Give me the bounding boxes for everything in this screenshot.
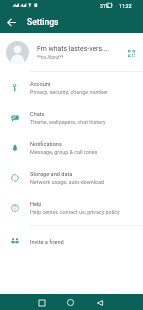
button[interactable]: Invite a friend bbox=[0, 226, 143, 256]
staticText: Account bbox=[30, 81, 51, 88]
button[interactable]: Home bbox=[63, 295, 78, 310]
staticText: Chats bbox=[30, 111, 45, 118]
button[interactable]: Recent apps bbox=[34, 295, 49, 310]
staticText: Fm whats lastes-vers... bbox=[37, 45, 108, 53]
staticText: Help bbox=[30, 201, 42, 208]
button[interactable]: Account bbox=[0, 72, 143, 102]
staticText: Network usage, auto-download bbox=[30, 179, 105, 185]
staticText: Storage and data bbox=[30, 171, 73, 178]
staticText: Theme, wallpapers, chat history bbox=[30, 119, 106, 125]
staticText: Message, group & call tones bbox=[30, 149, 98, 155]
button[interactable]: Storage and data bbox=[0, 162, 143, 192]
staticText: **no About** bbox=[37, 55, 64, 60]
button[interactable]: Back bbox=[92, 295, 107, 310]
button[interactable]: Fm whats lastes-vers... bbox=[0, 33, 143, 71]
button[interactable]: Back bbox=[0, 11, 22, 33]
button[interactable]: Help bbox=[0, 192, 143, 222]
staticText: Invite a friend bbox=[30, 239, 64, 246]
button[interactable]: Notifications bbox=[0, 132, 143, 162]
staticText: 11:22 bbox=[119, 3, 132, 9]
button[interactable]: Chats bbox=[0, 102, 143, 132]
staticText: 31% bbox=[100, 3, 110, 9]
staticText: Privacy, security, change number bbox=[30, 89, 108, 95]
staticText: Settings bbox=[27, 17, 59, 27]
staticText: Help center, contact us, privacy policy bbox=[30, 209, 120, 215]
button[interactable]: QR code bbox=[124, 46, 138, 60]
staticText: Notifications bbox=[30, 141, 62, 148]
